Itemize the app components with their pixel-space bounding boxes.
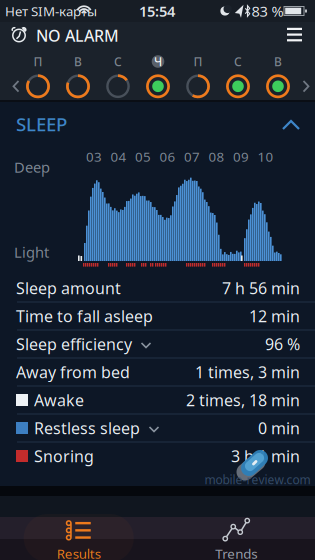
button[interactable]: Ч — [138, 55, 178, 107]
staticText: С — [114, 53, 122, 69]
staticText: 1 times, 3 min — [195, 361, 300, 383]
staticText: NO ALARM — [36, 25, 119, 46]
staticText: 09 — [233, 148, 249, 165]
button[interactable]: Previous week — [6, 74, 26, 98]
staticText: 10 — [257, 148, 273, 165]
staticText: П — [193, 53, 202, 69]
button[interactable]: Sleep efficiency — [16, 330, 300, 358]
staticText: П — [33, 53, 42, 69]
staticText: Sleep efficiency — [16, 333, 132, 355]
staticText: Sleep amount — [16, 277, 121, 299]
staticText: 05 — [135, 148, 151, 165]
staticText: 12 min — [249, 305, 300, 327]
button[interactable]: С — [98, 55, 138, 107]
button[interactable]: П — [18, 55, 58, 107]
staticText: 08 — [208, 148, 224, 165]
button[interactable]: Results — [0, 519, 157, 560]
staticText: 04 — [110, 148, 126, 165]
staticText: Away from bed — [16, 361, 130, 383]
staticText: Results — [57, 545, 101, 560]
button[interactable]: NO ALARM — [7, 20, 157, 50]
staticText: Snoring — [34, 445, 94, 467]
button[interactable]: Next week — [296, 74, 315, 98]
staticText: В — [274, 53, 282, 69]
button[interactable]: С — [218, 55, 258, 107]
staticText: 2 times, 18 min — [186, 389, 300, 411]
staticText: 7 h 56 min — [222, 277, 300, 299]
staticText: С — [234, 53, 242, 69]
staticText: 0 min — [258, 417, 300, 439]
staticText: 96 % — [265, 333, 300, 355]
staticText: Restless sleep — [34, 417, 140, 439]
staticText: Ч — [154, 53, 162, 69]
staticText: В — [74, 53, 82, 69]
button[interactable]: Restless sleep — [16, 414, 300, 442]
staticText: Нет SIM-карты — [5, 2, 97, 20]
staticText: mobile-review.com — [204, 471, 310, 487]
staticText: Light — [14, 242, 49, 262]
staticText: 3 h 1 min — [231, 445, 300, 467]
staticText: 83 % — [251, 1, 283, 21]
staticText: 07 — [184, 148, 200, 165]
staticText: Deep — [14, 157, 50, 177]
button[interactable]: Trends — [158, 519, 315, 560]
button[interactable]: Menu — [279, 21, 309, 47]
staticText: 06 — [159, 148, 175, 165]
staticText: 15:54 — [139, 1, 175, 21]
staticText: 03 — [86, 148, 102, 165]
button[interactable]: Collapse — [275, 113, 307, 137]
staticText: Awake — [34, 389, 84, 411]
staticText: Trends — [215, 545, 257, 560]
button[interactable]: В — [258, 55, 298, 107]
staticText: Time to fall asleep — [16, 305, 153, 327]
button[interactable]: В — [58, 55, 98, 107]
staticText: SLEEP — [16, 112, 67, 136]
button[interactable]: П — [178, 55, 218, 107]
